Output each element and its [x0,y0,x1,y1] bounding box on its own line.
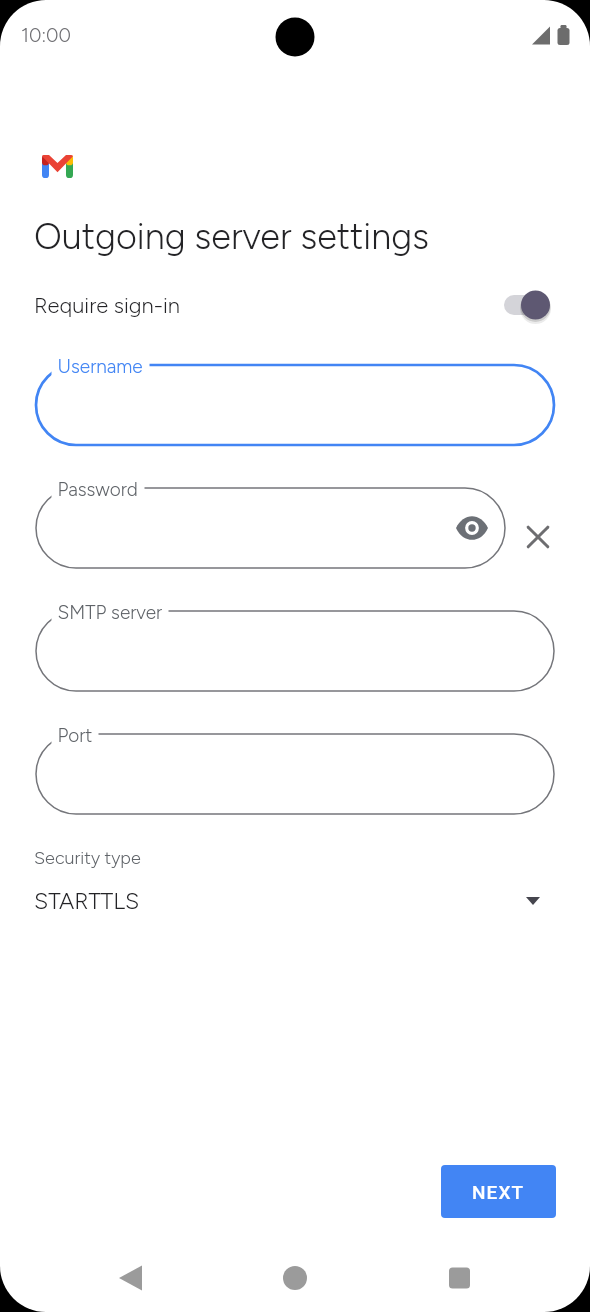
button[interactable] [0,0,590,1312]
button[interactable]: Clear [523,522,553,552]
staticText: 10:00 [21,23,71,46]
button[interactable] [0,0,590,1312]
button[interactable]: Require sign-in [498,288,550,322]
staticText: Security type [34,847,141,869]
staticText: Require sign-in [34,292,181,318]
staticText: Outgoing server settings [34,215,429,258]
button[interactable] [0,0,590,1312]
button[interactable] [0,0,590,1312]
staticText: STARTTLS [34,887,140,915]
button[interactable]: NEXT [441,1165,556,1218]
staticText: NEXT [472,1181,525,1203]
button[interactable]: Show password [452,508,492,548]
button[interactable]: Security type [0,845,590,921]
button[interactable]: Require sign-in [0,280,590,330]
